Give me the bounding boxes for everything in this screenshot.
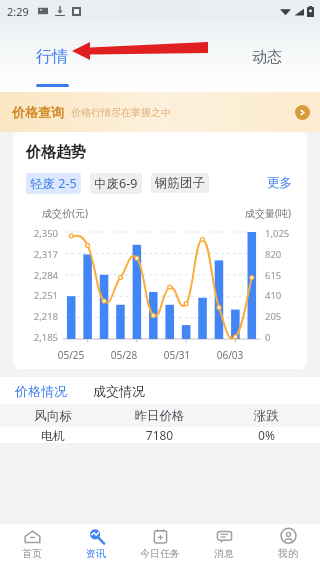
button[interactable]: 轻废 2-5: [26, 173, 81, 194]
staticText: 2,251: [26, 289, 58, 302]
button[interactable]: 成交情况: [91, 380, 147, 402]
staticText: 价格情况: [15, 383, 67, 399]
staticText: 205: [265, 310, 297, 323]
button[interactable]: 行情: [28, 41, 76, 73]
button[interactable]: 我的: [256, 524, 320, 568]
staticText: 轻废 2-5: [30, 175, 77, 192]
staticText: 05/31: [157, 348, 197, 362]
staticText: 价格查询: [12, 104, 64, 120]
staticText: 2,218: [26, 310, 58, 323]
staticText: 410: [265, 289, 297, 302]
staticText: 价格趋势: [26, 143, 86, 162]
button[interactable]: 动态: [244, 42, 290, 73]
staticText: 7180: [106, 427, 213, 443]
staticText: 05/28: [104, 348, 144, 362]
staticText: 资讯: [86, 547, 106, 560]
staticText: 今日任务: [140, 547, 180, 560]
button[interactable]: 钢筋团子: [151, 173, 209, 193]
staticText: 消息: [214, 547, 234, 560]
staticText: 成交情况: [93, 383, 145, 399]
staticText: 涨跌: [213, 408, 320, 424]
button[interactable]: 今日任务: [128, 524, 192, 568]
staticText: 风向标: [0, 408, 106, 424]
staticText: 0: [265, 331, 297, 344]
staticText: 价格行情尽在掌握之中: [71, 106, 171, 119]
button[interactable]: 中废6-9: [90, 173, 142, 194]
button[interactable]: 价格查询: [0, 92, 320, 132]
staticText: 昨日价格: [106, 408, 213, 424]
staticText: 电机: [0, 428, 106, 443]
other: 更多价格查询: [295, 105, 310, 120]
button[interactable]: 首页: [0, 524, 64, 568]
staticText: 2,317: [26, 248, 58, 261]
staticText: 首页: [22, 547, 42, 560]
button[interactable]: 消息: [192, 524, 256, 568]
button[interactable]: 更多: [262, 172, 297, 194]
staticText: 820: [265, 248, 297, 261]
staticText: 0%: [213, 427, 320, 443]
staticText: 2:29: [7, 4, 29, 19]
button[interactable]: 资讯: [64, 524, 128, 568]
staticText: 2,350: [26, 227, 58, 240]
staticText: 615: [265, 269, 297, 282]
staticText: 更多: [267, 175, 292, 191]
staticText: 动态: [252, 48, 282, 67]
staticText: 行情: [36, 47, 68, 67]
staticText: 中废6-9: [94, 175, 138, 192]
button[interactable]: 价格情况: [13, 380, 69, 402]
staticText: 05/25: [51, 348, 91, 362]
staticText: 2,284: [26, 269, 58, 282]
staticText: 06/03: [210, 348, 250, 362]
staticText: 成交价(元): [42, 206, 88, 220]
staticText: 钢筋团子: [155, 175, 205, 191]
staticText: 2,185: [26, 331, 58, 344]
staticText: 成交量(吨): [245, 206, 291, 220]
staticText: 1,025: [265, 227, 297, 240]
staticText: 我的: [278, 547, 298, 560]
